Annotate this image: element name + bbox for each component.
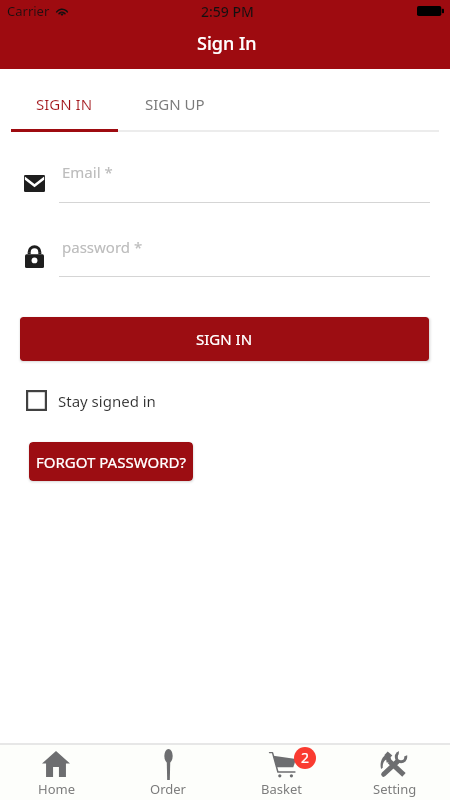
staticText: SIGN IN (36, 94, 93, 114)
button[interactable]: Setting (336, 743, 450, 800)
button[interactable]: SIGN UP (121, 78, 229, 130)
other: Password (25, 245, 44, 268)
staticText: Carrier (7, 2, 50, 20)
button[interactable]: SIGN IN (20, 317, 429, 361)
button[interactable]: password * (59, 233, 430, 277)
other: Email (24, 175, 45, 192)
staticText: Basket (261, 780, 302, 798)
staticText: Setting (373, 780, 417, 798)
staticText: 2:59 PM (201, 2, 254, 21)
button[interactable]: Order (112, 743, 224, 800)
staticText: Home (38, 780, 75, 798)
staticText: 2 (301, 748, 310, 767)
staticText: SIGN UP (145, 94, 205, 114)
button[interactable]: SIGN IN (11, 78, 118, 130)
button[interactable]: FORGOT PASSWORD? (29, 442, 193, 481)
button[interactable]: Stay signed in (26, 389, 156, 412)
button[interactable]: 2 (224, 743, 336, 800)
staticText: Email * (62, 162, 113, 182)
staticText: Sign In (197, 31, 257, 56)
staticText: Order (150, 780, 186, 798)
staticText: FORGOT PASSWORD? (36, 452, 186, 472)
button[interactable]: Email * (59, 158, 430, 203)
staticText: SIGN IN (196, 329, 253, 349)
staticText: password * (62, 237, 143, 257)
button[interactable]: Home (0, 743, 112, 800)
staticText: Stay signed in (58, 391, 156, 411)
